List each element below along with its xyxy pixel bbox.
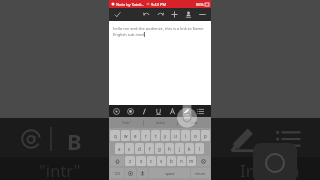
button[interactable]: x	[136, 156, 146, 166]
staticText: "intr"	[39, 160, 81, 180]
staticText: i	[185, 133, 187, 139]
staticText: 86%	[196, 2, 204, 7]
button[interactable]: f	[145, 143, 154, 154]
staticText: a	[118, 146, 121, 152]
button[interactable]: m	[187, 156, 196, 166]
button[interactable]: Highlight	[179, 105, 193, 117]
button[interactable]: space	[149, 168, 190, 178]
button[interactable]: g	[155, 143, 164, 154]
staticText: r	[145, 133, 147, 139]
button[interactable]: h	[165, 143, 174, 154]
button[interactable]: Add	[169, 9, 180, 20]
button[interactable]: More options	[197, 9, 208, 20]
button[interactable]: k	[185, 143, 194, 154]
button[interactable]: Undo	[141, 9, 152, 20]
button[interactable]: Voice input	[137, 168, 148, 178]
button[interactable]: y	[161, 130, 170, 141]
button[interactable]: Share	[183, 9, 194, 20]
button[interactable]: return	[191, 168, 210, 178]
button[interactable]: l	[195, 143, 204, 154]
staticText: intr	[191, 120, 198, 125]
staticText: y	[164, 133, 167, 139]
staticText: s	[128, 146, 131, 152]
staticText: v	[160, 158, 163, 164]
staticText: d	[138, 146, 141, 152]
staticText: 9:43 PM	[151, 2, 167, 7]
button[interactable]: Text style	[109, 105, 123, 117]
staticText: t	[155, 133, 157, 139]
staticText: b	[170, 158, 173, 164]
button[interactable]: Emoji	[125, 168, 136, 178]
staticText: m	[189, 158, 194, 164]
staticText: p	[204, 133, 207, 139]
button[interactable]: q	[110, 130, 120, 141]
staticText: g	[158, 146, 161, 152]
button[interactable]: Underline	[151, 105, 165, 117]
button[interactable]: d	[135, 143, 144, 154]
staticText: u	[174, 133, 177, 139]
button[interactable]: w	[121, 130, 130, 141]
button[interactable]: a	[115, 143, 124, 154]
staticText: n	[180, 158, 183, 164]
staticText: hello me and the audience, this is a lin…	[113, 26, 204, 31]
staticText: x	[140, 158, 143, 164]
staticText: intro	[156, 120, 165, 125]
staticText: Intr n	[240, 160, 300, 180]
staticText: English sub ined	[113, 32, 144, 37]
button[interactable]: v	[157, 156, 166, 166]
button[interactable]: p	[201, 130, 210, 141]
staticText: o	[194, 133, 197, 139]
staticText: j	[179, 146, 181, 152]
staticText: 123	[114, 171, 121, 176]
staticText: return	[195, 171, 206, 176]
button[interactable]: "intr"	[109, 117, 143, 128]
staticText: k	[188, 146, 191, 152]
staticText: Note by Tatek..	[116, 2, 144, 7]
staticText: f	[149, 146, 151, 152]
button[interactable]: intr	[178, 117, 211, 128]
staticText: B	[67, 126, 82, 150]
staticText: c	[150, 158, 153, 164]
button[interactable]: e	[131, 130, 140, 141]
staticText: space	[165, 171, 175, 176]
button[interactable]: s	[125, 143, 134, 154]
staticText: "intr"	[121, 120, 132, 125]
button[interactable]: Italic	[137, 105, 151, 117]
button[interactable]: hello me and the audience, this is a lin…	[113, 26, 207, 105]
button[interactable]: t	[151, 130, 160, 141]
button[interactable]: z	[125, 156, 135, 166]
button[interactable]: Bold	[123, 105, 137, 117]
button[interactable]: r	[141, 130, 150, 141]
button[interactable]: u	[171, 130, 180, 141]
staticText: q	[114, 133, 117, 139]
button[interactable]: Shift	[110, 156, 124, 166]
button[interactable]: List	[193, 105, 207, 117]
button[interactable]: j	[175, 143, 184, 154]
staticText: e	[134, 133, 137, 139]
button[interactable]: c	[147, 156, 156, 166]
staticText: l	[199, 146, 201, 152]
button[interactable]: intro	[144, 117, 177, 128]
button[interactable]: Redo	[155, 9, 166, 20]
button[interactable]: Done	[112, 9, 123, 20]
button[interactable]: 123	[110, 168, 124, 178]
button[interactable]: n	[177, 156, 186, 166]
button[interactable]: i	[181, 130, 190, 141]
staticText: w	[124, 133, 128, 139]
button[interactable]: b	[167, 156, 176, 166]
staticText: z	[129, 158, 132, 164]
staticText: h	[168, 146, 171, 152]
button[interactable]: o	[191, 130, 200, 141]
button[interactable]: Backspace	[197, 156, 210, 166]
button[interactable]: Text color	[165, 105, 179, 117]
